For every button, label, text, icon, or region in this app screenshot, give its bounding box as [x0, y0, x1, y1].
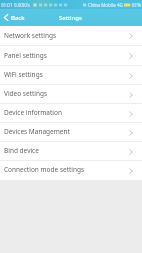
staticText: Connection mode settings: [4, 165, 85, 174]
button[interactable]: Bind device: [0, 142, 142, 161]
staticText: 61%: [132, 2, 141, 8]
staticText: Bind device: [4, 146, 39, 155]
staticText: Video settings: [4, 89, 48, 98]
staticText: Device information: [4, 108, 62, 117]
staticText: Devices Management: [4, 127, 70, 136]
button[interactable]: WiFi settings: [0, 66, 142, 85]
button[interactable]: Video settings: [0, 85, 142, 104]
staticText: China Mobile: [88, 2, 116, 8]
staticText: 01:01: [1, 2, 13, 8]
button[interactable]: Back: [0, 9, 31, 26]
staticText: Settings: [59, 14, 82, 22]
button[interactable]: Devices Management: [0, 123, 142, 142]
button[interactable]: Connection mode settings: [0, 161, 142, 180]
button[interactable]: Network settings: [0, 26, 142, 46]
staticText: 4G: [117, 2, 123, 8]
staticText: Panel settings: [4, 51, 47, 60]
staticText: WiFi settings: [4, 70, 43, 79]
staticText: 0.00K/s: [14, 2, 30, 8]
button[interactable]: Panel settings: [0, 46, 142, 66]
staticText: Back: [11, 14, 25, 22]
button[interactable]: Device information: [0, 104, 142, 123]
staticText: Network settings: [4, 31, 57, 40]
